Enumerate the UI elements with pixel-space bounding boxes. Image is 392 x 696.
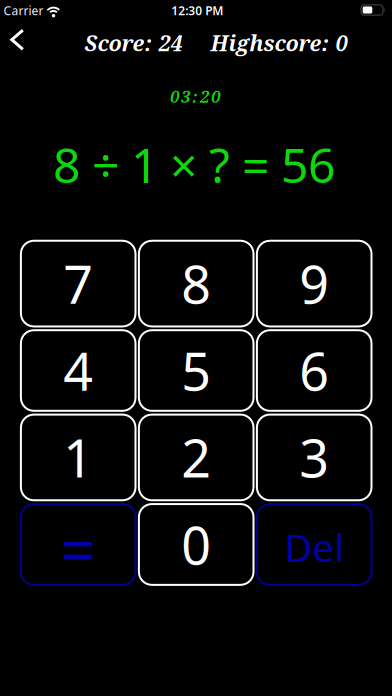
staticText: 12:30 PM — [171, 2, 223, 18]
button[interactable]: 9 — [257, 241, 371, 326]
button[interactable]: 7 — [21, 241, 135, 326]
staticText: Score: 24 — [84, 28, 182, 57]
button[interactable]: 1 — [21, 415, 135, 500]
button[interactable]: Back — [6, 28, 30, 52]
button[interactable]: Del — [257, 504, 371, 585]
staticText: 1 — [63, 423, 93, 492]
button[interactable]: = — [21, 504, 135, 585]
staticText: 0 — [181, 510, 211, 579]
button[interactable]: 8 — [139, 241, 253, 326]
staticText: 6 — [299, 336, 329, 405]
staticText: Carrier — [4, 2, 44, 18]
staticText: 3 — [299, 423, 329, 492]
staticText: 7 — [63, 249, 93, 318]
staticText: = — [61, 508, 96, 590]
staticText: 9 — [299, 249, 329, 318]
button[interactable]: 5 — [139, 330, 253, 411]
staticText: 4 — [63, 336, 93, 405]
staticText: Highscore: 0 — [210, 28, 347, 57]
button[interactable]: 4 — [21, 330, 135, 411]
staticText: 03:20 — [170, 85, 220, 108]
staticText: 8 — [181, 249, 211, 318]
staticText: 5 — [181, 336, 211, 405]
button[interactable]: 0 — [139, 504, 253, 585]
button[interactable]: 2 — [139, 415, 253, 500]
staticText: Del — [284, 521, 344, 573]
staticText: 2 — [181, 423, 211, 492]
button[interactable]: 6 — [257, 330, 371, 411]
staticText: 8 ÷ 1 × ? = 56 — [53, 132, 335, 196]
button[interactable]: 3 — [257, 415, 371, 500]
